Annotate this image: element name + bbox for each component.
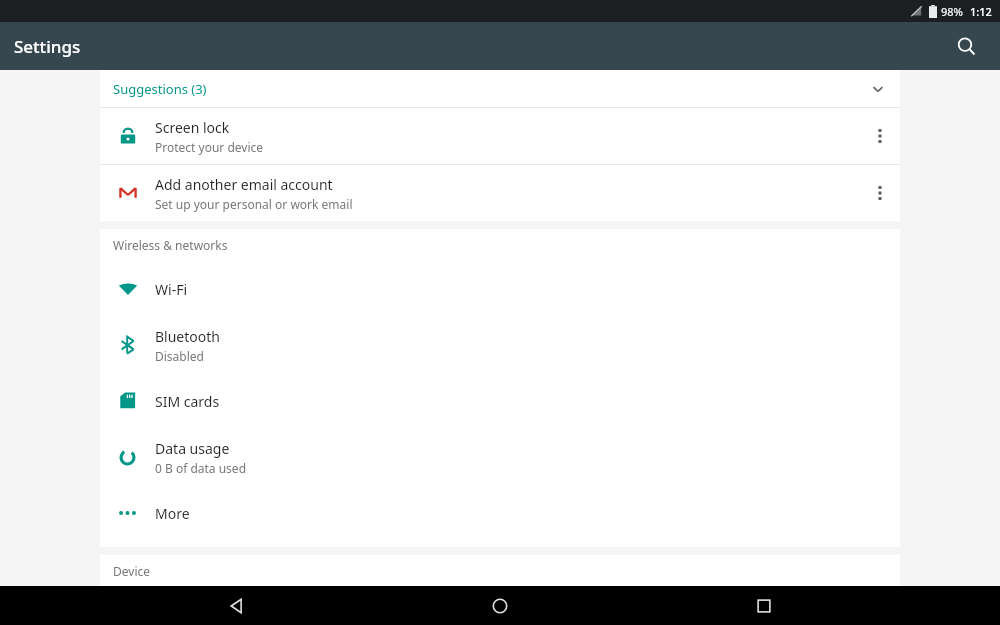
staticText: Settings xyxy=(14,35,81,58)
button[interactable]: Home xyxy=(472,586,528,625)
button[interactable]: Data usage xyxy=(100,429,900,485)
button[interactable]: SIM cards xyxy=(100,373,900,429)
button[interactable]: More xyxy=(100,485,900,541)
staticText: Suggestions (3) xyxy=(113,80,207,98)
staticText: SIM cards xyxy=(155,392,220,411)
staticText: Device xyxy=(113,563,151,579)
button[interactable]: Screen lock xyxy=(100,108,900,164)
button[interactable]: Recent apps xyxy=(736,586,792,625)
button[interactable]: Add another email account xyxy=(100,165,900,221)
button[interactable]: More options xyxy=(860,165,900,221)
staticText: Wireless & networks xyxy=(113,237,228,253)
staticText: Data usage xyxy=(155,439,230,458)
button[interactable]: Wi-Fi xyxy=(100,261,900,317)
staticText: 98% xyxy=(941,4,963,19)
staticText: Screen lock xyxy=(155,118,230,137)
staticText: Wi-Fi xyxy=(155,280,188,299)
staticText: Protect your device xyxy=(155,139,264,155)
button[interactable]: Back xyxy=(208,586,264,625)
staticText: Disabled xyxy=(155,348,204,364)
button[interactable]: Bluetooth xyxy=(100,317,900,373)
staticText: Add another email account xyxy=(155,175,333,194)
button[interactable]: Search xyxy=(946,26,986,66)
button[interactable]: More options xyxy=(860,108,900,164)
staticText: Bluetooth xyxy=(155,327,220,346)
button[interactable]: Suggestions (3) xyxy=(100,70,900,107)
staticText: 1:12 xyxy=(970,4,992,19)
staticText: 0 B of data used xyxy=(155,460,247,476)
staticText: More xyxy=(155,504,190,523)
staticText: Set up your personal or work email xyxy=(155,196,353,212)
